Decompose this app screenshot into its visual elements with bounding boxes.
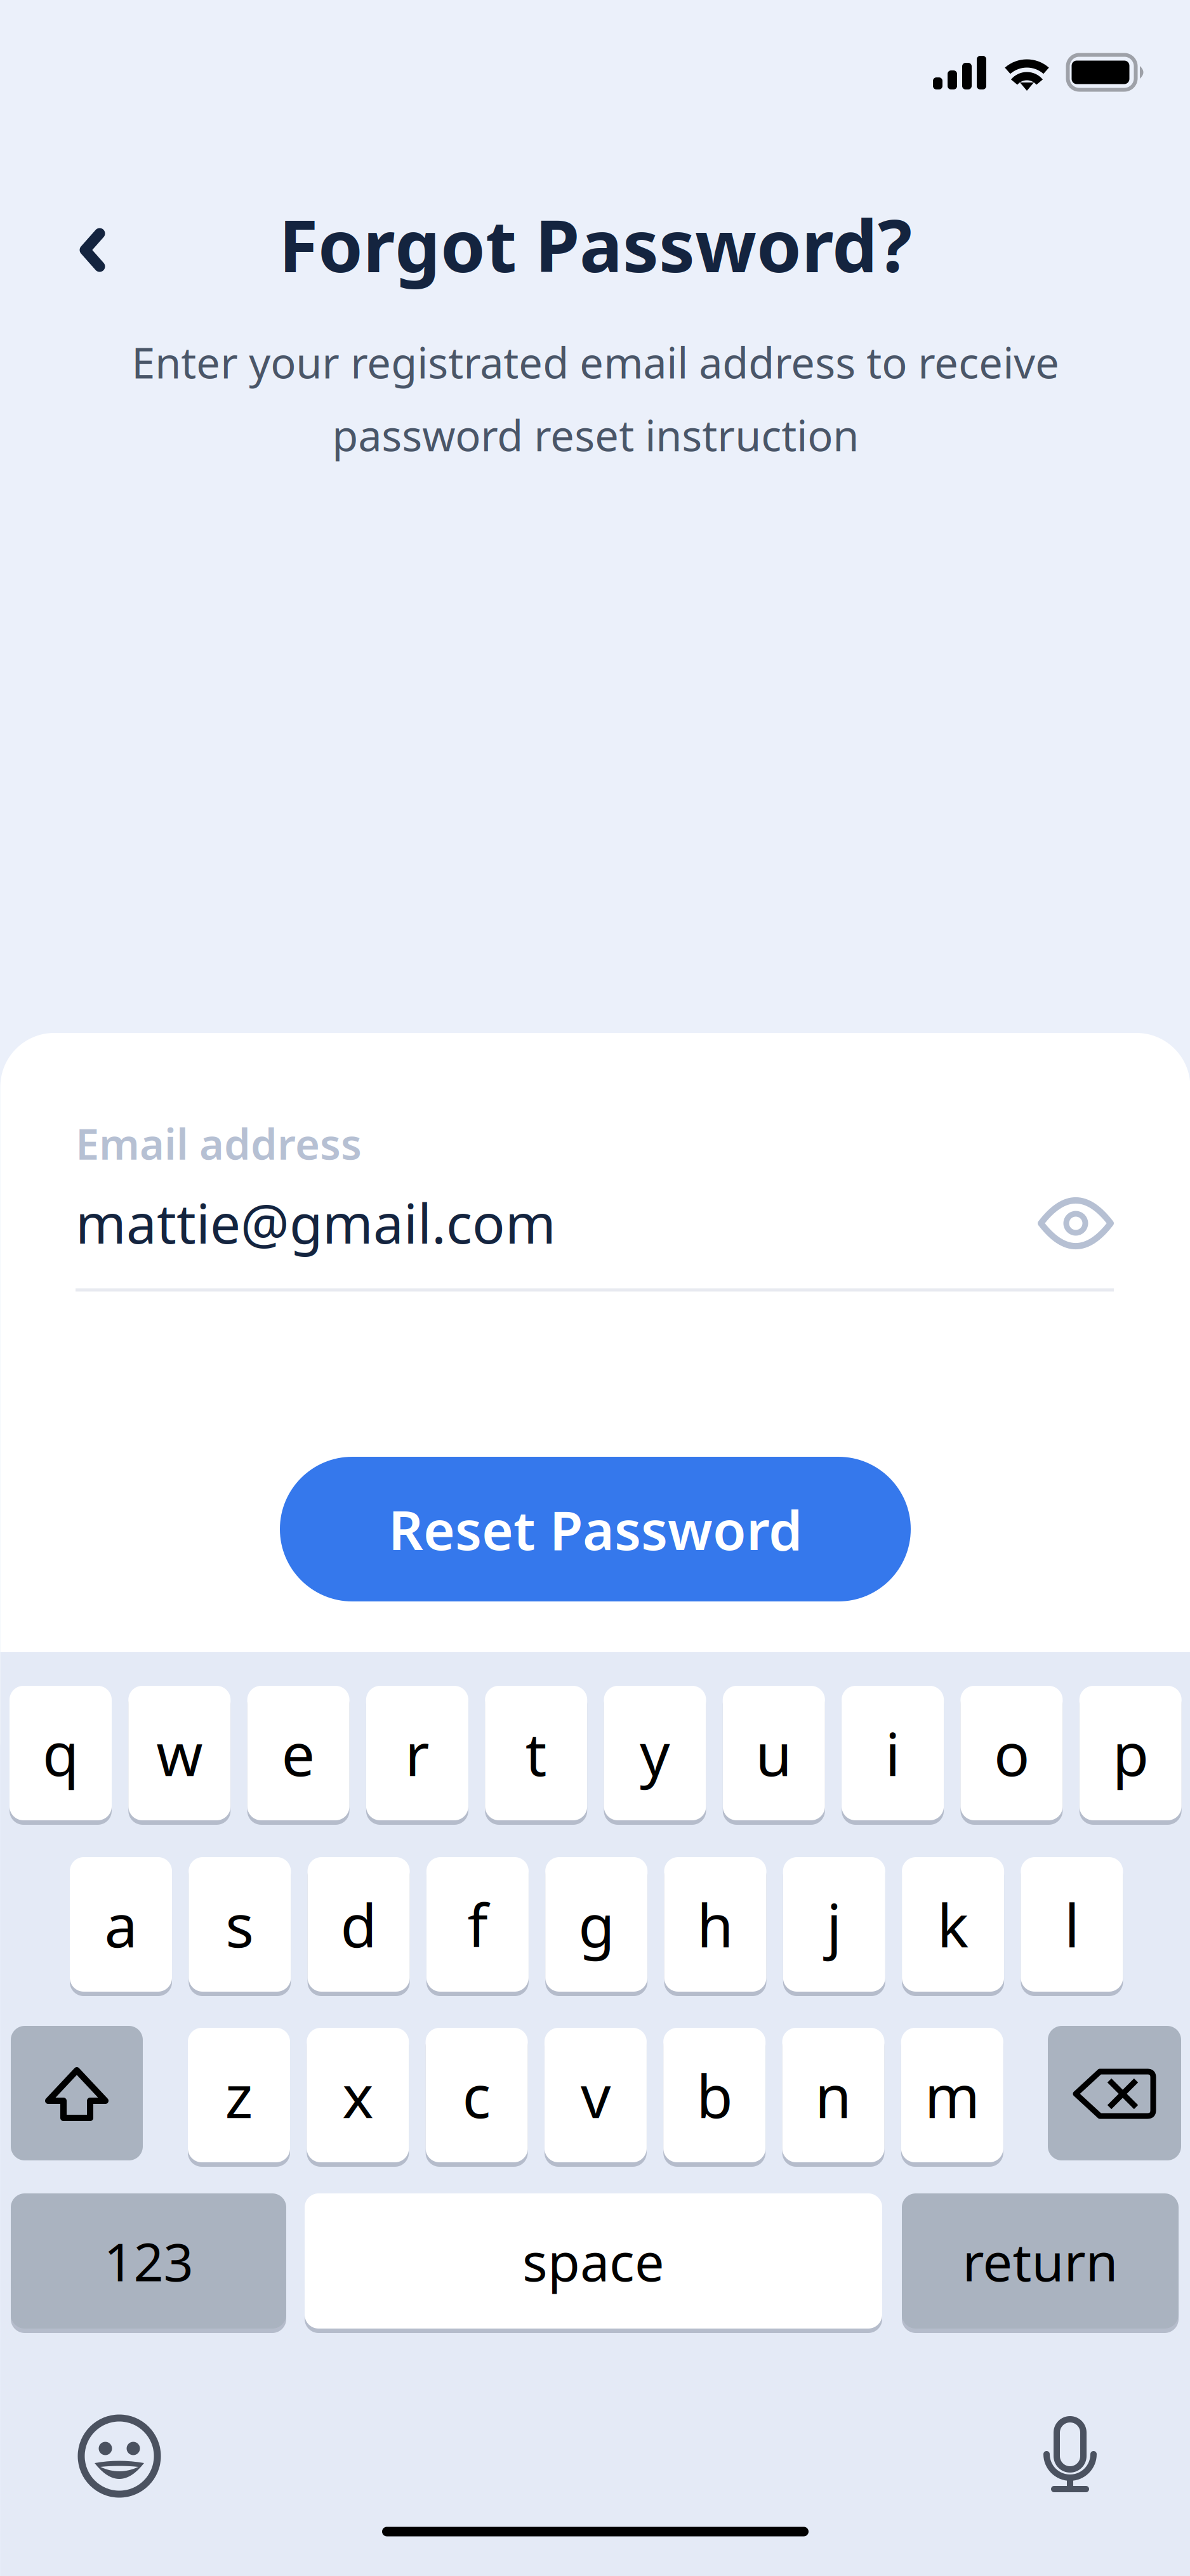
- staticText: mattie@gmail.com: [76, 1187, 556, 1259]
- button[interactable]: d: [308, 1855, 410, 1994]
- button[interactable]: m: [901, 2026, 1003, 2165]
- button[interactable]: t: [485, 1684, 587, 1823]
- button[interactable]: return: [902, 2191, 1179, 2331]
- button[interactable]: v: [544, 2026, 647, 2165]
- staticText: f: [467, 1885, 488, 1964]
- staticText: l: [1064, 1885, 1080, 1964]
- staticText: a: [104, 1885, 137, 1964]
- button[interactable]: e: [247, 1684, 349, 1823]
- staticText: u: [755, 1714, 792, 1792]
- button[interactable]: f: [426, 1855, 529, 1994]
- staticText: n: [815, 2056, 852, 2134]
- button[interactable]: b: [663, 2026, 766, 2165]
- staticText: d: [341, 1885, 377, 1964]
- button[interactable]: Shift: [11, 2026, 143, 2160]
- staticText: y: [640, 1714, 670, 1792]
- staticText: e: [282, 1714, 315, 1792]
- button[interactable]: j: [783, 1855, 885, 1994]
- staticText: Enter your registrated email address to …: [131, 334, 1059, 463]
- button[interactable]: l: [1021, 1855, 1123, 1994]
- button[interactable]: n: [782, 2026, 884, 2165]
- staticText: 123: [104, 2226, 193, 2296]
- staticText: Email address: [76, 1115, 362, 1171]
- staticText: space: [522, 2226, 664, 2296]
- staticText: o: [994, 1714, 1029, 1792]
- staticText: w: [156, 1714, 203, 1792]
- staticText: j: [827, 1885, 842, 1964]
- staticText: z: [225, 2056, 253, 2134]
- staticText: q: [43, 1714, 79, 1792]
- button[interactable]: z: [188, 2026, 290, 2165]
- button[interactable]: y: [604, 1684, 706, 1823]
- staticText: v: [581, 2056, 610, 2134]
- button[interactable]: o: [961, 1684, 1063, 1823]
- button[interactable]: k: [902, 1855, 1004, 1994]
- button[interactable]: Delete: [1048, 2026, 1181, 2160]
- button[interactable]: Reset Password: [280, 1457, 911, 1601]
- button[interactable]: x: [307, 2026, 409, 2165]
- button[interactable]: p: [1079, 1684, 1182, 1823]
- button[interactable]: s: [189, 1855, 291, 1994]
- staticText: p: [1112, 1714, 1149, 1792]
- button[interactable]: a: [70, 1855, 172, 1994]
- staticText: Forgot Password?: [279, 196, 912, 292]
- staticText: h: [697, 1885, 734, 1964]
- staticText: return: [962, 2226, 1118, 2296]
- button[interactable]: h: [664, 1855, 766, 1994]
- staticText: Reset Password: [388, 1493, 802, 1565]
- button[interactable]: u: [723, 1684, 825, 1823]
- staticText: g: [578, 1885, 614, 1964]
- staticText: t: [525, 1714, 547, 1792]
- staticText: x: [342, 2056, 373, 2134]
- staticText: c: [462, 2056, 491, 2134]
- staticText: k: [937, 1885, 969, 1964]
- button[interactable]: c: [426, 2026, 528, 2165]
- button[interactable]: q: [10, 1684, 112, 1823]
- button[interactable]: Dictate: [1027, 2400, 1116, 2508]
- button[interactable]: w: [128, 1684, 231, 1823]
- button[interactable]: 123: [11, 2191, 286, 2331]
- button[interactable]: Back: [58, 208, 128, 292]
- button[interactable]: space: [305, 2191, 882, 2331]
- staticText: r: [405, 1714, 430, 1792]
- staticText: b: [696, 2056, 733, 2134]
- staticText: i: [885, 1714, 900, 1792]
- button[interactable]: i: [842, 1684, 944, 1823]
- staticText: s: [225, 1885, 254, 1964]
- button[interactable]: r: [366, 1684, 468, 1823]
- button[interactable]: Emoji keyboard: [75, 2412, 164, 2500]
- button[interactable]: g: [545, 1855, 647, 1994]
- button[interactable]: Show password: [1031, 1188, 1120, 1258]
- staticText: m: [925, 2056, 980, 2134]
